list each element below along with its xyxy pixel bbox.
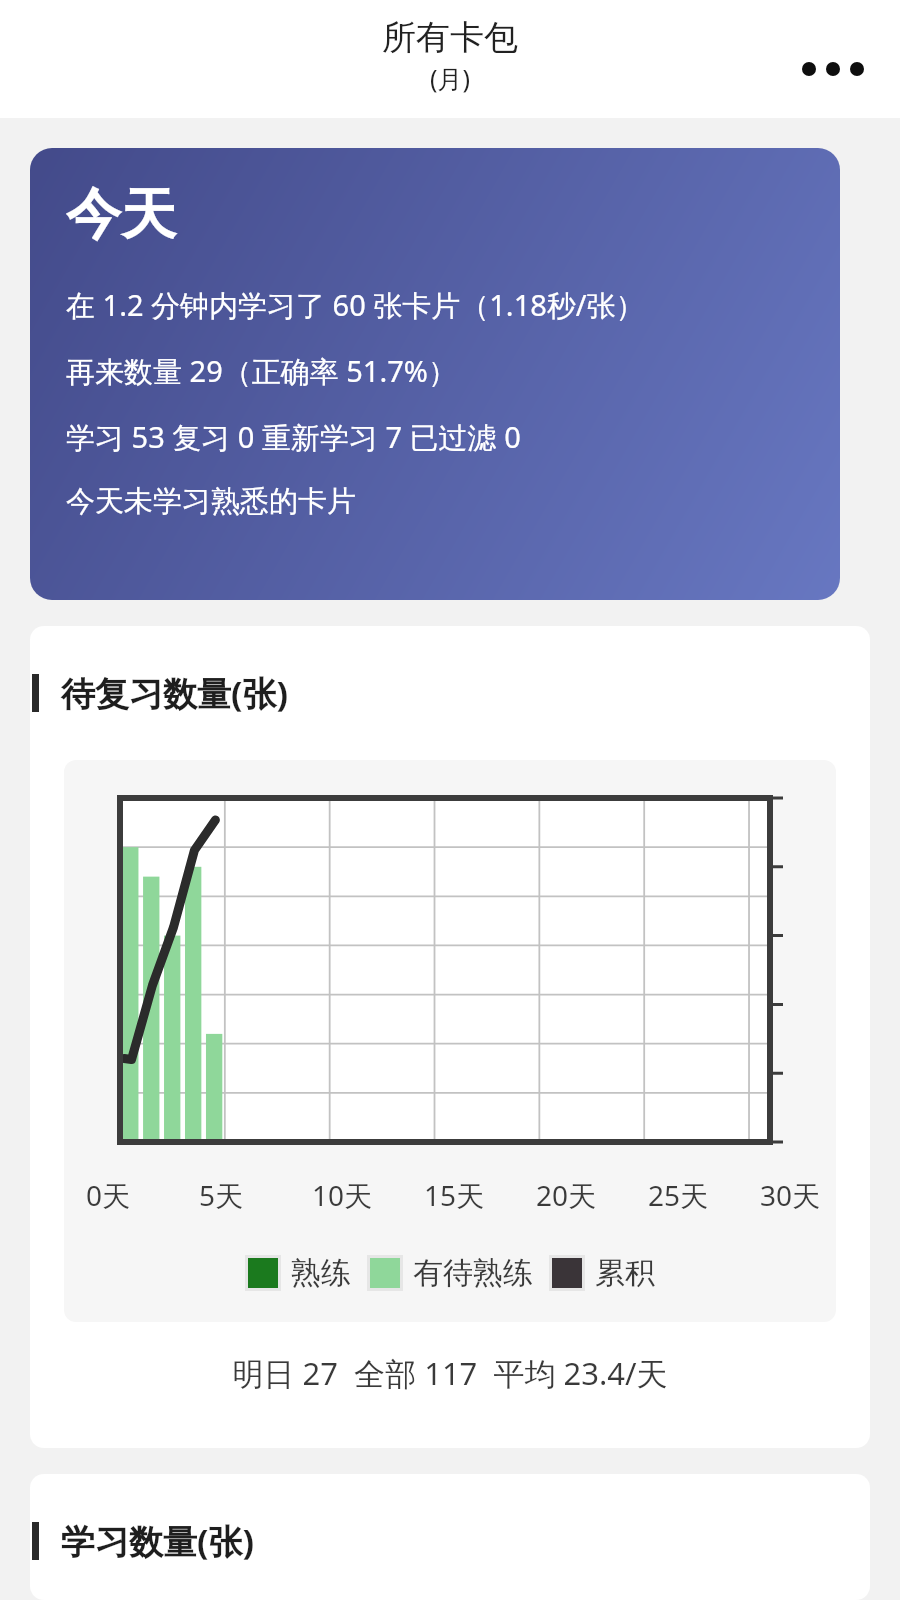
staticText: 再来数量 29（正确率 51.7%） <box>66 351 457 391</box>
staticText: 明日 27 全部 117 平均 23.4/天 <box>30 1352 870 1394</box>
staticText: 有待熟练 <box>413 1254 533 1292</box>
staticText: 20天 <box>536 1176 597 1214</box>
staticText: 25天 <box>648 1176 709 1214</box>
staticText: 待复习数量(张) <box>61 670 289 716</box>
staticText: (月) <box>430 61 471 95</box>
button[interactable]: 今天 <box>30 148 840 600</box>
staticText: 10天 <box>312 1176 373 1214</box>
staticText: 累积 <box>595 1254 655 1292</box>
staticText: 学习 53 复习 0 重新学习 7 已过滤 0 <box>66 417 521 457</box>
staticText: 在 1.2 分钟内学习了 60 张卡片（1.18秒/张） <box>66 285 645 325</box>
button[interactable]: 待复习数量(张) <box>30 626 870 1448</box>
staticText: 所有卡包 <box>382 16 518 59</box>
staticText: 熟练 <box>291 1254 351 1292</box>
staticText: 今天 <box>66 180 176 249</box>
staticText: 30天 <box>760 1176 821 1214</box>
staticText: 今天未学习熟悉的卡片 <box>66 483 356 520</box>
staticText: 0天 <box>86 1176 131 1214</box>
button[interactable]: More options <box>790 26 876 112</box>
staticText: 15天 <box>424 1176 485 1214</box>
staticText: 5天 <box>199 1176 244 1214</box>
staticText: 学习数量(张) <box>61 1518 255 1564</box>
button[interactable]: 学习数量(张) <box>30 1474 870 1600</box>
